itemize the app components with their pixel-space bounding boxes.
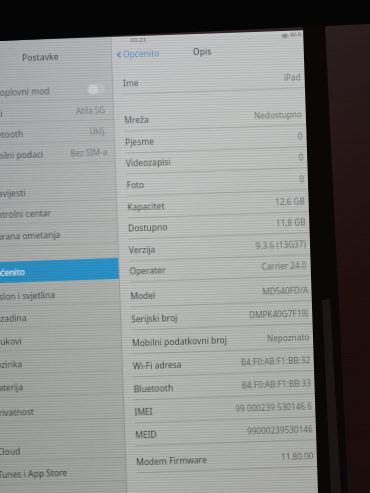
button[interactable]: Toggle airplane mode: [87, 83, 105, 95]
staticText: Operater: [129, 264, 167, 277]
staticText: Wi-Fi: [290, 31, 302, 39]
staticText: Wi-Fi adresa: [133, 359, 182, 372]
button[interactable]: Wi-Fi: [0, 99, 113, 125]
button[interactable]: Mobilni podatkovni broj: [121, 324, 330, 355]
staticText: DMPK40G7F19J: [249, 307, 309, 320]
staticText: 11,8 GB: [276, 216, 306, 228]
staticText: Uklj.: [89, 125, 107, 137]
staticText: Serijski broj: [131, 312, 178, 325]
button[interactable]: Kontrolni centar: [0, 200, 117, 226]
button[interactable]: IMEI: [123, 393, 333, 424]
staticText: Baterija: [0, 381, 24, 394]
button[interactable]: Zvukovi: [0, 327, 121, 353]
button[interactable]: Serijski broj: [120, 301, 329, 331]
staticText: Mobilni podaci: [0, 148, 44, 162]
staticText: Pjesme: [125, 136, 154, 149]
staticText: B4:F0:AB:F1:BB:33: [241, 377, 312, 391]
button[interactable]: iCloud: [0, 437, 125, 463]
staticText: iCloud: [0, 445, 21, 458]
staticText: 99000239530146: [247, 423, 313, 436]
staticText: Atila 5G: [76, 104, 106, 116]
button[interactable]: Operater: [118, 253, 328, 283]
staticText: Pozadina: [0, 312, 27, 325]
staticText: Model: [130, 290, 157, 302]
button[interactable]: Pozadina: [0, 304, 120, 330]
button[interactable]: Pjesme: [114, 124, 323, 154]
staticText: Foto: [126, 179, 145, 191]
button[interactable]: Općenito: [0, 258, 119, 284]
button[interactable]: Foto: [115, 167, 325, 197]
button[interactable]: Model: [119, 278, 329, 308]
button[interactable]: Obavijesti: [0, 179, 116, 205]
staticText: MD540FD/A: [262, 284, 308, 297]
staticText: Bluetooth: [133, 382, 174, 395]
staticText: Bluetooth: [0, 128, 24, 141]
staticText: Zrakoplovni mod: [0, 85, 50, 99]
staticText: Verzija: [129, 244, 156, 256]
button[interactable]: Lozinka: [0, 350, 122, 376]
staticText: Ime: [123, 77, 139, 90]
button[interactable]: Mreža: [113, 102, 323, 132]
staticText: Nedostupno: [254, 108, 302, 121]
button[interactable]: MEID: [124, 416, 334, 447]
button[interactable]: Baterija: [0, 373, 123, 399]
button[interactable]: Dostupno: [117, 210, 326, 240]
staticText: 0: [298, 151, 304, 162]
staticText: iTunes i App Store: [0, 467, 68, 481]
staticText: Kapacitet: [127, 200, 165, 213]
staticText: 12,6 GB: [275, 195, 305, 207]
button[interactable]: Videozapisi: [114, 145, 324, 175]
button[interactable]: Bluetooth: [0, 120, 114, 146]
button[interactable]: Općenito: [115, 47, 160, 61]
staticText: Obavijesti: [0, 187, 26, 200]
staticText: Modem Firmware: [136, 454, 207, 468]
staticText: Nepoznato: [267, 331, 310, 344]
staticText: Videozapisi: [126, 156, 171, 170]
staticText: Kontrolni centar: [0, 207, 52, 221]
staticText: Mobilni podatkovni broj: [132, 334, 227, 349]
staticText: Postavke: [22, 51, 59, 64]
staticText: Općenito: [123, 47, 160, 61]
button[interactable]: Zabrana ometanja: [0, 222, 117, 248]
staticText: Carrier 24.0: [261, 259, 308, 272]
staticText: MEID: [135, 429, 157, 441]
staticText: Zabrana ometanja: [0, 229, 62, 243]
staticText: Wi-Fi: [0, 108, 3, 120]
staticText: 0: [298, 130, 303, 142]
staticText: Zaslon i svjetlina: [0, 289, 56, 303]
staticText: Mreža: [124, 114, 149, 127]
button[interactable]: Ime: [112, 65, 321, 95]
staticText: Bez SIM-a: [70, 146, 108, 158]
staticText: Općenito: [0, 266, 26, 279]
staticText: B4:F0:AB:F1:BB:32: [241, 354, 311, 368]
staticText: 9.3.6 (13G37): [255, 238, 307, 251]
button[interactable]: Privatnost: [0, 398, 124, 424]
staticText: 00.23: [130, 36, 147, 44]
staticText: Dostupno: [128, 221, 168, 234]
staticText: 11.80.00: [281, 450, 314, 462]
staticText: IMEI: [134, 406, 154, 418]
button[interactable]: Modem Firmware: [125, 443, 334, 474]
button[interactable]: Zaslon i svjetlina: [0, 282, 120, 308]
button[interactable]: Verzija: [117, 232, 327, 262]
button[interactable]: Bluetooth: [122, 370, 332, 401]
button[interactable]: Wi-Fi adresa: [121, 347, 331, 378]
staticText: Privatnost: [0, 406, 35, 419]
staticText: Lozinka: [0, 358, 23, 371]
button[interactable]: iTunes i App Store: [0, 460, 126, 486]
button[interactable]: Kapacitet: [116, 189, 326, 219]
staticText: Zvukovi: [0, 335, 22, 348]
button[interactable]: Mobilni podaci: [0, 141, 115, 167]
button[interactable]: Zrakoplovni mod: [0, 78, 112, 104]
staticText: 0: [299, 173, 305, 184]
staticText: Opis: [193, 45, 212, 58]
staticText: iPad: [284, 71, 301, 83]
staticText: 99 000239 530146 6: [235, 400, 312, 414]
